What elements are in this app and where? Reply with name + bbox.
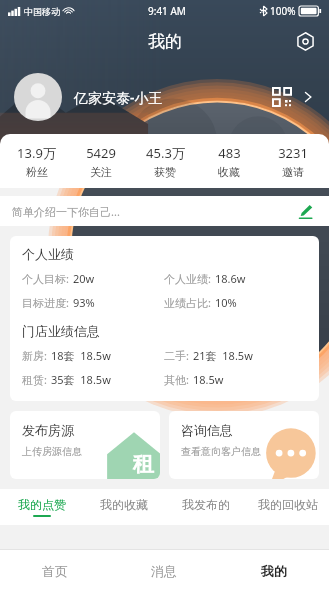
staticText: 首页 <box>42 563 68 579</box>
staticText: 上传房源信息 <box>22 445 82 458</box>
button[interactable]: 我的回收站 <box>247 489 329 525</box>
button[interactable]: 咨询信息 <box>169 411 319 479</box>
staticText: 10% <box>215 295 237 310</box>
staticText: 18套 18.5w <box>51 348 111 363</box>
staticText: 消息 <box>151 563 177 579</box>
staticText: 21套 18.5w <box>193 348 253 363</box>
staticText: 35套 18.5w <box>51 372 111 387</box>
staticText: 我的 <box>148 31 182 52</box>
staticText: 简单介绍一下你自己... <box>12 204 120 219</box>
button[interactable]: 45.3万 <box>133 134 197 188</box>
button[interactable]: 我的 <box>219 550 329 592</box>
staticText: 其他: <box>164 372 189 387</box>
staticText: 13.9万 <box>17 144 56 162</box>
staticText: 个人业绩: <box>164 271 211 286</box>
button[interactable]: 首页 <box>0 550 109 592</box>
staticText: 亿家安泰-小王 <box>74 88 163 107</box>
staticText: 我发布的 <box>182 497 230 512</box>
staticText: 门店业绩信息 <box>22 323 100 339</box>
staticText: 咨询信息 <box>181 422 233 438</box>
staticText: 93% <box>73 295 95 310</box>
button[interactable]: 我的点赞 <box>0 489 83 525</box>
staticText: 二手: <box>164 348 189 363</box>
staticText: 新房: <box>22 348 47 363</box>
staticText: 20w <box>73 271 95 286</box>
staticText: 100% <box>270 4 296 18</box>
button[interactable]: 亿家安泰-小王 <box>0 66 329 128</box>
staticText: 关注 <box>90 165 112 179</box>
button[interactable]: Edit bio <box>293 199 317 223</box>
staticText: 我的点赞 <box>18 497 66 512</box>
button[interactable]: 13.9万 <box>4 134 69 188</box>
staticText: 发布房源 <box>22 422 74 438</box>
staticText: 获赞 <box>154 165 176 179</box>
staticText: 5429 <box>86 144 116 162</box>
staticText: 18.6w <box>215 271 246 286</box>
staticText: 租赁: <box>22 372 47 387</box>
staticText: 粉丝 <box>26 165 48 179</box>
staticText: 邀请 <box>282 165 304 179</box>
staticText: 18.5w <box>193 372 224 387</box>
staticText: 483 <box>218 144 241 162</box>
button[interactable]: 483 <box>197 134 261 188</box>
staticText: 收藏 <box>218 165 240 179</box>
button[interactable]: 3231 <box>261 134 325 188</box>
button[interactable]: QR code <box>269 84 295 110</box>
button[interactable]: 5429 <box>69 134 133 188</box>
button[interactable]: 消息 <box>109 550 219 592</box>
staticText: 业绩占比: <box>164 295 211 310</box>
button[interactable]: 我发布的 <box>165 489 247 525</box>
staticText: 查看意向客户信息 <box>181 445 261 458</box>
staticText: 9:41 AM <box>148 4 186 18</box>
staticText: 个人业绩 <box>22 246 74 262</box>
staticText: 我的回收站 <box>258 497 318 512</box>
staticText: 我的收藏 <box>100 497 148 512</box>
staticText: 个人目标: <box>22 271 69 286</box>
staticText: 中国移动 <box>24 6 60 17</box>
staticText: 我的 <box>261 563 287 579</box>
staticText: 租 <box>133 451 154 477</box>
button[interactable]: 租 <box>10 411 160 479</box>
staticText: 45.3万 <box>146 144 185 162</box>
staticText: 3231 <box>278 144 308 162</box>
button[interactable]: 我的收藏 <box>83 489 165 525</box>
staticText: 目标进度: <box>22 295 69 310</box>
button[interactable]: Settings <box>291 27 319 55</box>
